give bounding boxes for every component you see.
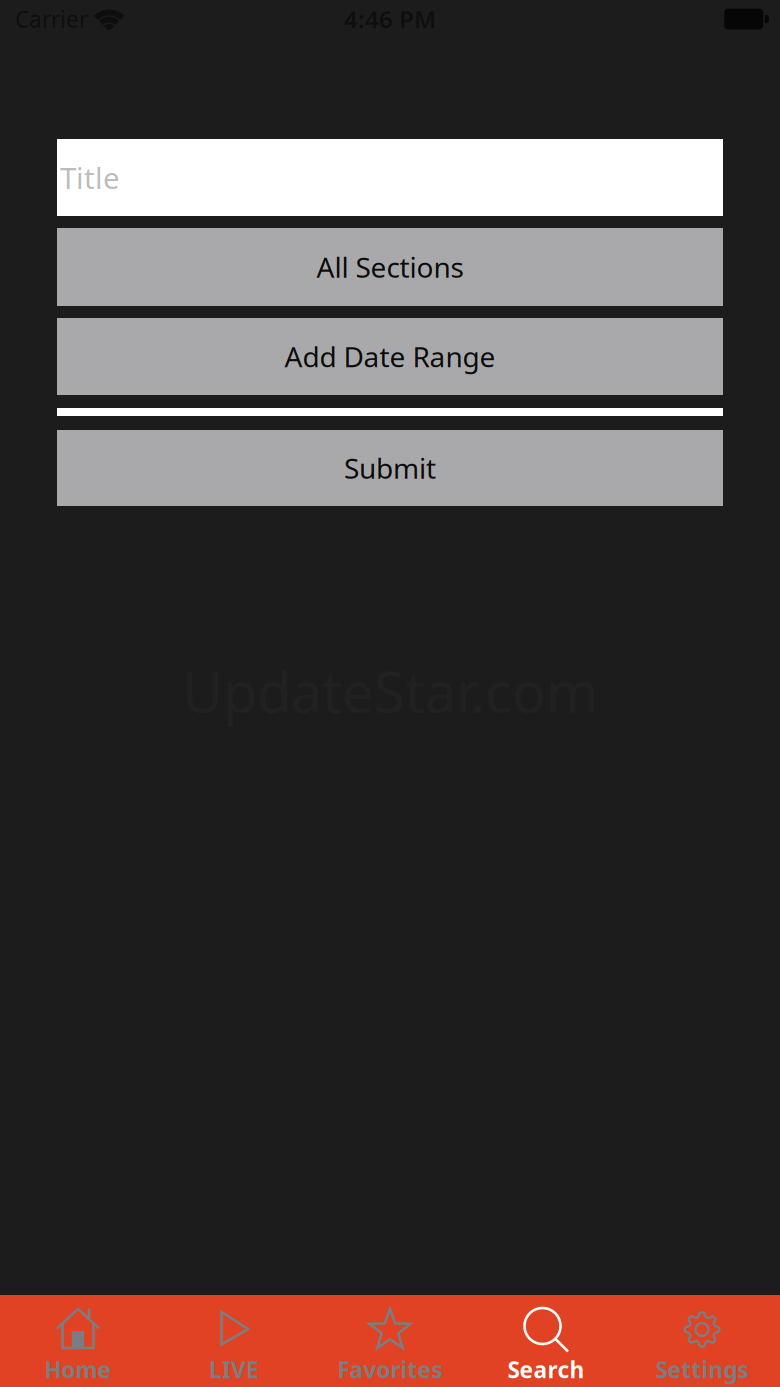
staticText: LIVE: [209, 1354, 259, 1384]
staticText: Settings: [655, 1354, 748, 1384]
button[interactable]: LIVE: [156, 1295, 312, 1387]
button[interactable]: Submit: [57, 430, 723, 506]
button[interactable]: All Sections: [57, 228, 723, 306]
staticText: Title: [60, 158, 120, 197]
button[interactable]: Settings: [624, 1295, 780, 1387]
staticText: Search: [507, 1354, 584, 1384]
staticText: Submit: [344, 449, 436, 487]
staticText: Home: [44, 1354, 111, 1384]
staticText: Add Date Range: [284, 338, 495, 375]
staticText: All Sections: [316, 248, 463, 286]
button[interactable]: Add Date Range: [57, 318, 723, 395]
staticText: 4:46 PM: [344, 3, 436, 35]
button[interactable]: Home: [0, 1295, 156, 1387]
button[interactable]: Search: [468, 1295, 624, 1387]
staticText: Carrier: [15, 4, 88, 34]
staticText: Favorites: [337, 1354, 442, 1384]
button[interactable]: Favorites: [312, 1295, 468, 1387]
button[interactable]: Title: [57, 139, 723, 216]
